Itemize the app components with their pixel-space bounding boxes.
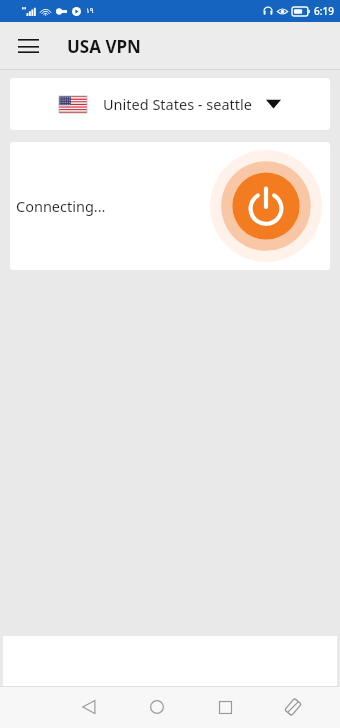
button[interactable]: Recent apps <box>206 688 244 726</box>
staticText: USA VPN <box>67 35 141 58</box>
staticText: ١٩ <box>86 7 94 15</box>
button[interactable]: Connect VPN <box>210 150 322 262</box>
staticText: 6:19 <box>314 4 334 18</box>
button[interactable]: Open navigation menu <box>10 28 46 64</box>
button[interactable]: United States - seattle <box>10 78 330 130</box>
button[interactable]: Back <box>70 688 108 726</box>
button[interactable]: Home <box>138 688 176 726</box>
staticText: United States - seattle <box>103 94 252 114</box>
staticText: Connecting... <box>16 196 106 216</box>
button[interactable]: Rotate screen <box>274 688 312 726</box>
